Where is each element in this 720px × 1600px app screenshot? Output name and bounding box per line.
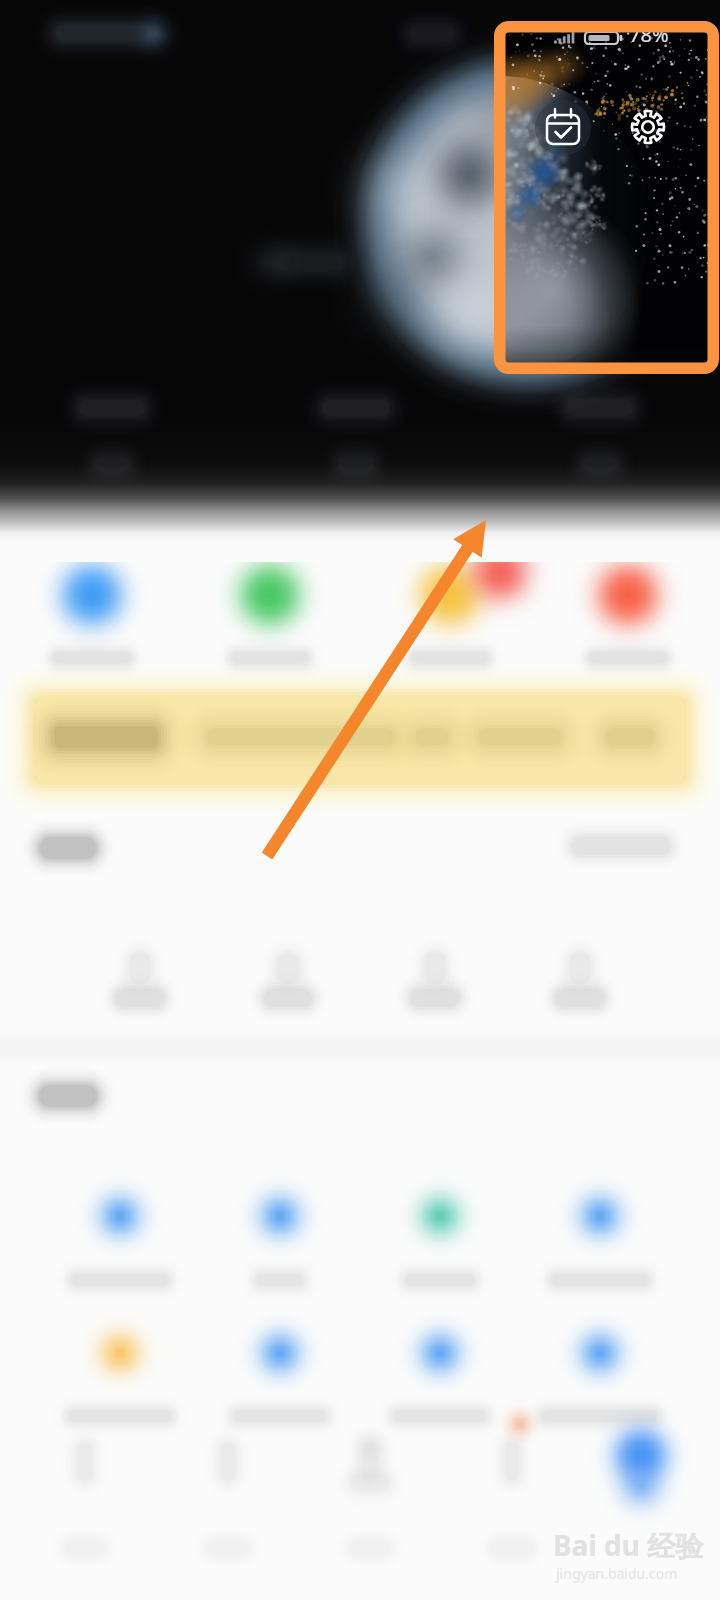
staticText: 78% — [629, 21, 669, 48]
staticText: jingyan.baidu.com — [556, 1564, 678, 1583]
button[interactable]: Calendar — [535, 100, 591, 156]
button[interactable]: Settings — [620, 99, 676, 155]
staticText: Bai du 经验 — [553, 1526, 704, 1564]
